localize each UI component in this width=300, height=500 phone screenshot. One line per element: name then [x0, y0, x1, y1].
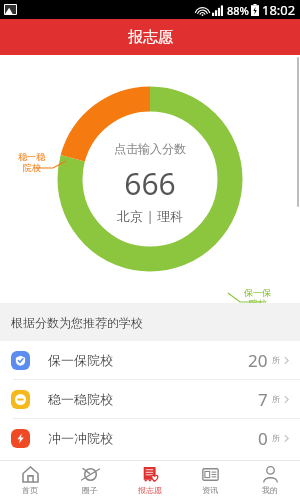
other: 首页: [22, 466, 39, 483]
button[interactable]: 报志愿: [120, 461, 180, 500]
staticText: 报志愿: [138, 485, 162, 495]
staticText: 首页: [22, 485, 38, 495]
staticText: 我的: [262, 485, 278, 495]
button[interactable]: 冲一冲院校: [0, 419, 300, 457]
staticText: 保一保: [244, 287, 271, 298]
staticText: 0: [258, 427, 268, 450]
staticText: 所: [272, 433, 280, 443]
staticText: 资讯: [202, 485, 218, 495]
staticText: 北京 | 理科: [117, 207, 183, 225]
staticText: 圈子: [82, 485, 98, 495]
staticText: 院校: [23, 162, 41, 173]
button[interactable]: 圈子: [60, 461, 120, 500]
staticText: 88%: [227, 3, 249, 18]
staticText: 报志愿: [128, 28, 173, 47]
button[interactable]: 稳一稳院校: [0, 380, 300, 418]
button[interactable]: 我的: [240, 461, 300, 500]
staticText: 稳一稳院校: [48, 391, 113, 407]
button[interactable]: 保一保院校: [0, 341, 300, 379]
staticText: 根据分数为您推荐的学校: [11, 315, 143, 330]
staticText: 20: [248, 349, 268, 372]
other: 我的: [262, 466, 279, 483]
button[interactable]: 点击输入分数: [0, 141, 300, 225]
staticText: 院校: [249, 298, 267, 309]
staticText: 所: [272, 394, 280, 404]
staticText: 稳一稳: [18, 151, 45, 162]
staticText: 保一保院校: [48, 352, 113, 368]
staticText: 18:02: [262, 1, 296, 19]
button[interactable]: 资讯: [180, 461, 240, 500]
staticText: 点击输入分数: [114, 141, 186, 156]
button[interactable]: 首页: [0, 461, 60, 500]
staticText: 7: [258, 388, 268, 411]
other: 资讯: [202, 466, 219, 483]
other: 圈子: [82, 466, 99, 483]
other: 报志愿: [142, 466, 159, 483]
staticText: 冲一冲院校: [48, 430, 113, 446]
staticText: 666: [124, 163, 176, 204]
staticText: 所: [272, 355, 280, 365]
